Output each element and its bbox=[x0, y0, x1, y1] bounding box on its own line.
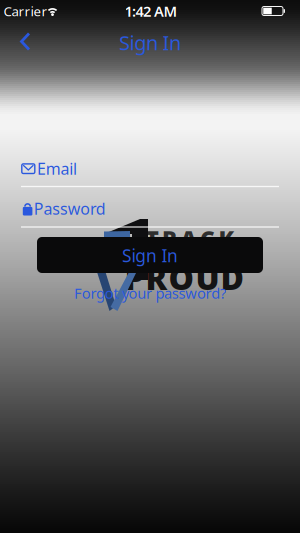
staticText: Carrier bbox=[3, 2, 47, 20]
staticText: Forgot your password? bbox=[74, 283, 226, 303]
staticText: Password bbox=[34, 198, 106, 219]
staticText: PROUD bbox=[124, 256, 243, 299]
staticText: TRACK bbox=[145, 223, 234, 253]
staticText: 1:42 AM bbox=[124, 1, 177, 21]
staticText: Sign In bbox=[119, 29, 181, 56]
staticText: Sign In bbox=[122, 244, 178, 267]
staticText: Email bbox=[37, 158, 77, 179]
